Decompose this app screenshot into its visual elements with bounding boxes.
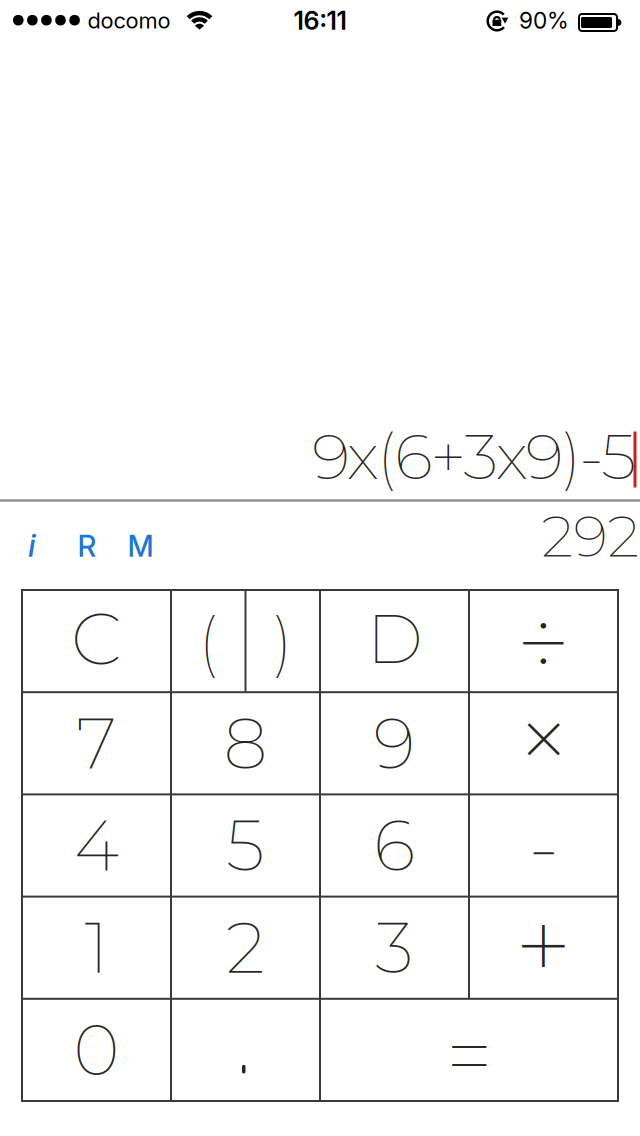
button[interactable]: Recall memory: [65, 524, 109, 568]
button[interactable]: Decimal point: [173, 1001, 318, 1099]
button[interactable]: 9: [322, 694, 467, 792]
staticText: 7: [76, 701, 116, 786]
button[interactable]: 4: [24, 796, 169, 895]
staticText: 6: [373, 803, 415, 888]
button[interactable]: 5: [173, 796, 318, 895]
staticText: 9: [373, 701, 415, 786]
button[interactable]: Divide: [471, 594, 616, 692]
button[interactable]: Equals: [322, 1006, 616, 1104]
button[interactable]: Minus: [471, 796, 616, 895]
staticText: C: [71, 595, 122, 682]
staticText: 1: [84, 905, 108, 990]
staticText: 0: [73, 1007, 119, 1092]
staticText: 2: [226, 905, 265, 990]
staticText: M: [127, 528, 153, 564]
button[interactable]: ): [247, 592, 318, 690]
button[interactable]: 7: [24, 694, 169, 792]
button[interactable]: Delete: [322, 589, 467, 688]
staticText: +: [514, 883, 572, 1008]
button[interactable]: Multiply: [471, 689, 616, 787]
staticText: ): [272, 600, 293, 682]
staticText: 90%: [519, 7, 569, 34]
staticText: i: [28, 526, 36, 564]
staticText: (: [198, 600, 219, 682]
staticText: 292: [541, 501, 639, 571]
button[interactable]: Info: [11, 523, 53, 567]
staticText: docomo: [87, 7, 170, 34]
staticText: 8: [223, 701, 267, 786]
button[interactable]: Clear: [24, 589, 169, 688]
button[interactable]: 2: [173, 899, 318, 997]
staticText: ÷: [516, 584, 571, 702]
button[interactable]: 1: [24, 899, 169, 997]
button[interactable]: Memory: [117, 524, 163, 568]
staticText: 16:11: [293, 5, 346, 36]
button[interactable]: 3: [322, 899, 467, 997]
staticText: R: [77, 528, 96, 564]
staticText: 3: [375, 905, 414, 990]
button[interactable]: (: [173, 592, 243, 690]
button[interactable]: 6: [322, 796, 467, 895]
staticText: 4: [74, 803, 119, 888]
button[interactable]: 8: [173, 694, 318, 792]
staticText: 9x(6+3x9)-5: [312, 417, 636, 495]
staticText: -: [528, 797, 558, 894]
staticText: 5: [226, 803, 265, 888]
staticText: =: [446, 1005, 492, 1106]
staticText: ×: [514, 675, 572, 802]
staticText: D: [366, 597, 422, 680]
button[interactable]: Plus: [471, 897, 616, 995]
button[interactable]: 0: [24, 1001, 169, 1099]
